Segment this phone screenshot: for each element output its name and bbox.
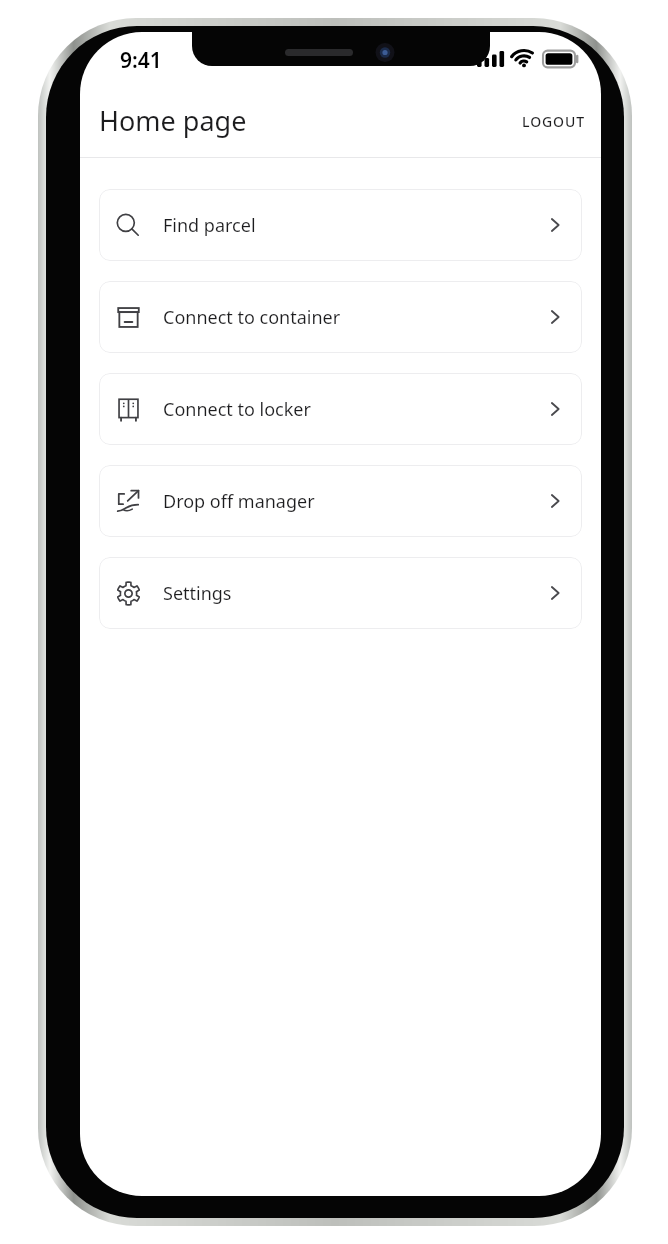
- button[interactable]: Drop off manager: [99, 465, 582, 537]
- button[interactable]: LOGOUT: [506, 103, 601, 140]
- staticText: LOGOUT: [522, 112, 585, 131]
- button[interactable]: Connect to container: [99, 281, 582, 353]
- staticText: 9:41: [120, 46, 162, 75]
- staticText: Find parcel: [163, 213, 542, 238]
- button[interactable]: Settings: [99, 557, 582, 629]
- staticText: Connect to container: [163, 305, 542, 330]
- button[interactable]: Connect to locker: [99, 373, 582, 445]
- staticText: Connect to locker: [163, 397, 542, 422]
- staticText: Drop off manager: [163, 489, 542, 514]
- staticText: Settings: [163, 581, 542, 606]
- staticText: Home page: [99, 102, 247, 139]
- button[interactable]: Find parcel: [99, 189, 582, 261]
